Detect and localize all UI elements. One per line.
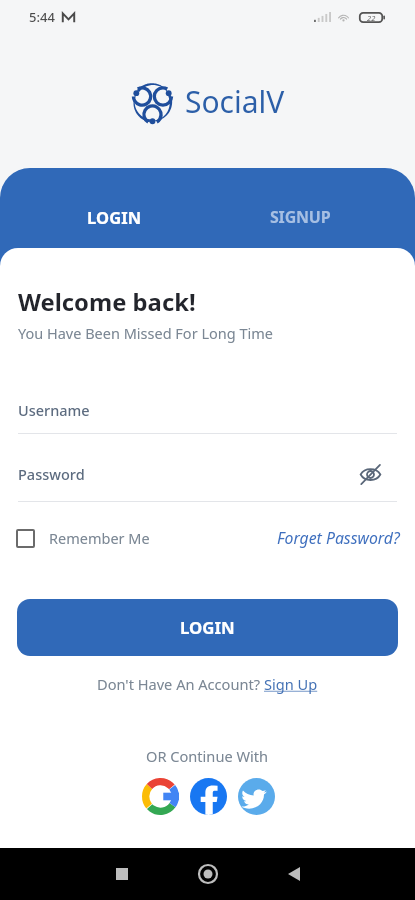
button[interactable]: LOGIN (17, 599, 398, 656)
button[interactable]: Sign in with Twitter (232, 772, 280, 820)
button[interactable]: LOGIN (22, 205, 207, 229)
button[interactable]: Remember Me (16, 528, 150, 548)
button[interactable]: Sign in with Facebook (184, 772, 232, 820)
button[interactable]: Sign in with Google (136, 772, 184, 820)
staticText: Sign Up (264, 674, 318, 694)
staticText: Password (18, 464, 85, 484)
staticText: Don't Have An Account? (97, 674, 264, 694)
button[interactable]: Sign Up (264, 674, 318, 694)
staticText: OR Continue With (146, 746, 269, 766)
button[interactable]: Back (271, 851, 317, 897)
button[interactable]: SIGNUP (207, 205, 393, 229)
staticText: LOGIN (180, 616, 235, 639)
staticText: Forget Password? (277, 527, 400, 549)
staticText: Welcome back! (18, 286, 196, 318)
staticText: 22 (367, 13, 376, 23)
staticText: You Have Been Missed For Long Time (18, 323, 273, 343)
staticText: SIGNUP (270, 206, 331, 228)
button[interactable]: Recents (99, 851, 145, 897)
staticText: LOGIN (87, 206, 142, 228)
staticText: SocialV (185, 81, 285, 122)
staticText: 5:44 (29, 8, 55, 26)
button[interactable]: Show password (355, 459, 385, 489)
button[interactable]: Forget Password? (277, 527, 400, 549)
button[interactable]: Home (185, 851, 231, 897)
staticText: Remember Me (49, 528, 150, 548)
staticText: Username (18, 400, 90, 420)
